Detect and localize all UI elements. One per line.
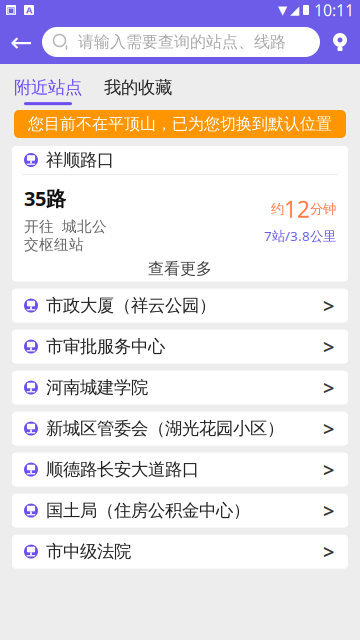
button[interactable]: 您目前不在平顶山，已为您切换到默认位置 xyxy=(0,110,360,138)
staticText: 新城区管委会（湖光花园小区） xyxy=(46,418,284,439)
button[interactable]: 新城区管委会（湖光花园小区） xyxy=(0,412,360,446)
button[interactable]: 定位 xyxy=(320,20,360,64)
staticText: 约 xyxy=(271,201,284,217)
staticText: ▣ xyxy=(6,5,15,15)
button[interactable]: 顺德路长安大道路口 xyxy=(0,453,360,487)
staticText: 10:11 xyxy=(314,0,354,21)
button[interactable]: 返回 xyxy=(0,20,42,64)
staticText: A xyxy=(26,4,32,16)
staticText: 您目前不在平顶山，已为您切换到默认位置 xyxy=(28,114,332,134)
staticText: ▼ xyxy=(278,3,287,17)
button[interactable]: 国土局（住房公积金中心） xyxy=(0,494,360,528)
staticText: 市中级法院 xyxy=(46,541,131,562)
staticText: 开往 城北公交枢纽站 xyxy=(24,218,107,254)
staticText: 分钟 xyxy=(310,201,336,217)
button[interactable]: 市中级法院 xyxy=(0,535,360,569)
staticText: 35路 xyxy=(24,185,66,212)
button[interactable]: 附近站点 xyxy=(0,67,82,105)
button[interactable]: 市政大厦（祥云公园） xyxy=(0,289,360,323)
staticText: 我的收藏 xyxy=(104,77,172,98)
staticText: 附近站点 xyxy=(14,77,82,98)
staticText: > xyxy=(323,415,334,442)
staticText: 12 xyxy=(284,194,310,224)
button[interactable]: 河南城建学院 xyxy=(0,371,360,405)
staticText: 7站/3.8公里 xyxy=(264,227,336,245)
staticText: ← xyxy=(10,27,32,57)
button[interactable]: 查看更多 xyxy=(12,256,348,282)
staticText: > xyxy=(323,374,334,401)
staticText: 市政大厦（祥云公园） xyxy=(46,295,216,316)
button[interactable]: 市审批服务中心 xyxy=(0,330,360,364)
staticText: > xyxy=(323,497,334,524)
staticText: 祥顺路口 xyxy=(46,149,114,171)
staticText: ◢ xyxy=(290,3,299,17)
staticText: 请输入需要查询的站点、线路 xyxy=(78,32,286,52)
button[interactable]: 我的收藏 xyxy=(82,67,172,105)
staticText: 国土局（住房公积金中心） xyxy=(46,500,250,521)
staticText: 河南城建学院 xyxy=(46,377,148,398)
staticText: > xyxy=(323,538,334,565)
button[interactable]: 请输入需要查询的站点、线路 xyxy=(42,27,320,57)
staticText: > xyxy=(323,333,334,360)
staticText: > xyxy=(323,292,334,319)
staticText: 顺德路长安大道路口 xyxy=(46,459,199,480)
staticText: > xyxy=(323,456,334,483)
staticText: 查看更多 xyxy=(148,259,212,278)
staticText: 市审批服务中心 xyxy=(46,336,165,357)
